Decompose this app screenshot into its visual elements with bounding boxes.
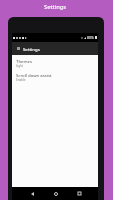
staticText: Light [16,64,24,68]
staticText: Scroll down assist [16,72,52,78]
button[interactable]: Home [44,187,68,200]
button[interactable]: Recent apps [68,187,91,200]
staticText: 80% [87,35,94,40]
button[interactable]: Themes [12,56,98,70]
staticText: Settings [23,46,40,52]
staticText: Enable [16,78,26,82]
button[interactable]: Scroll down assist [12,70,98,84]
button[interactable]: Open navigation menu [15,45,22,52]
staticText: Themes [16,58,32,64]
button[interactable]: Back [21,187,44,200]
staticText: Settings [44,3,67,11]
